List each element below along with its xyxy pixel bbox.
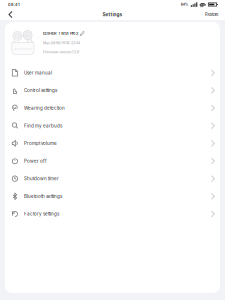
staticText: Control settings xyxy=(24,88,57,93)
staticText: Prompt volume xyxy=(24,141,57,146)
staticText: Factory settings xyxy=(24,211,59,217)
staticText: Firmware version:1.2.0 xyxy=(43,50,79,54)
button[interactable]: Shutdown timer xyxy=(5,170,220,187)
button[interactable]: Restore xyxy=(201,10,222,18)
staticText: Restore xyxy=(205,12,218,17)
staticText: Find my earbuds xyxy=(24,123,62,128)
staticText: Settings xyxy=(102,12,122,17)
button[interactable]: Wearing detection xyxy=(5,99,220,117)
button[interactable]: Back xyxy=(3,9,18,20)
staticText: User manual xyxy=(24,70,52,76)
staticText: Mac:04:66:76:9F:23:44 xyxy=(43,41,80,45)
staticText: Wearing detection xyxy=(24,105,65,111)
button[interactable]: Power off xyxy=(5,152,220,170)
button[interactable]: Bluetooth settings xyxy=(5,187,220,205)
staticText: 64% xyxy=(181,2,189,7)
button[interactable]: Factory settings xyxy=(5,205,220,223)
button[interactable]: Control settings xyxy=(5,82,220,99)
button[interactable]: User manual xyxy=(5,64,220,82)
staticText: Bluetooth settings xyxy=(24,194,62,199)
staticText: Shutdown timer xyxy=(24,176,59,181)
staticText: EDIFIER TWS1 Pro 2 xyxy=(43,31,78,36)
staticText: Power off xyxy=(24,158,47,164)
button[interactable]: Prompt volume xyxy=(5,135,220,152)
button[interactable]: Find my earbuds xyxy=(5,117,220,134)
staticText: 08:41 xyxy=(8,2,20,7)
